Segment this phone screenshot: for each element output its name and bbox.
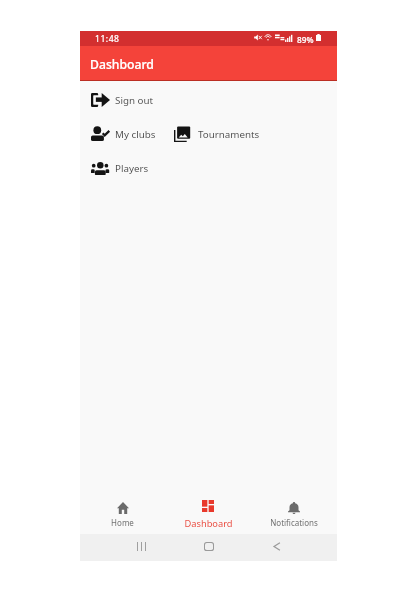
staticText: 89% [297, 34, 314, 45]
button[interactable]: Home [204, 542, 214, 561]
button[interactable]: Dashboard [165, 489, 251, 534]
button[interactable]: My clubs [80, 117, 163, 151]
button[interactable]: Home [80, 489, 165, 534]
staticText: Dashboard [90, 56, 154, 73]
button[interactable]: Back [272, 542, 281, 561]
staticText: 11:48 [95, 33, 120, 45]
staticText: Dashboard [184, 517, 233, 530]
button[interactable]: Recent apps [137, 542, 146, 561]
button[interactable]: Notifications [251, 489, 337, 534]
staticText: Players [115, 162, 149, 175]
button[interactable]: Players [80, 151, 156, 185]
button[interactable]: Tournaments [163, 117, 267, 151]
staticText: Tournaments [198, 128, 260, 141]
staticText: My clubs [115, 128, 156, 141]
button[interactable]: Sign out [80, 83, 161, 117]
staticText: Sign out [115, 94, 154, 107]
staticText: Home [111, 517, 134, 528]
staticText: Notifications [270, 517, 318, 528]
